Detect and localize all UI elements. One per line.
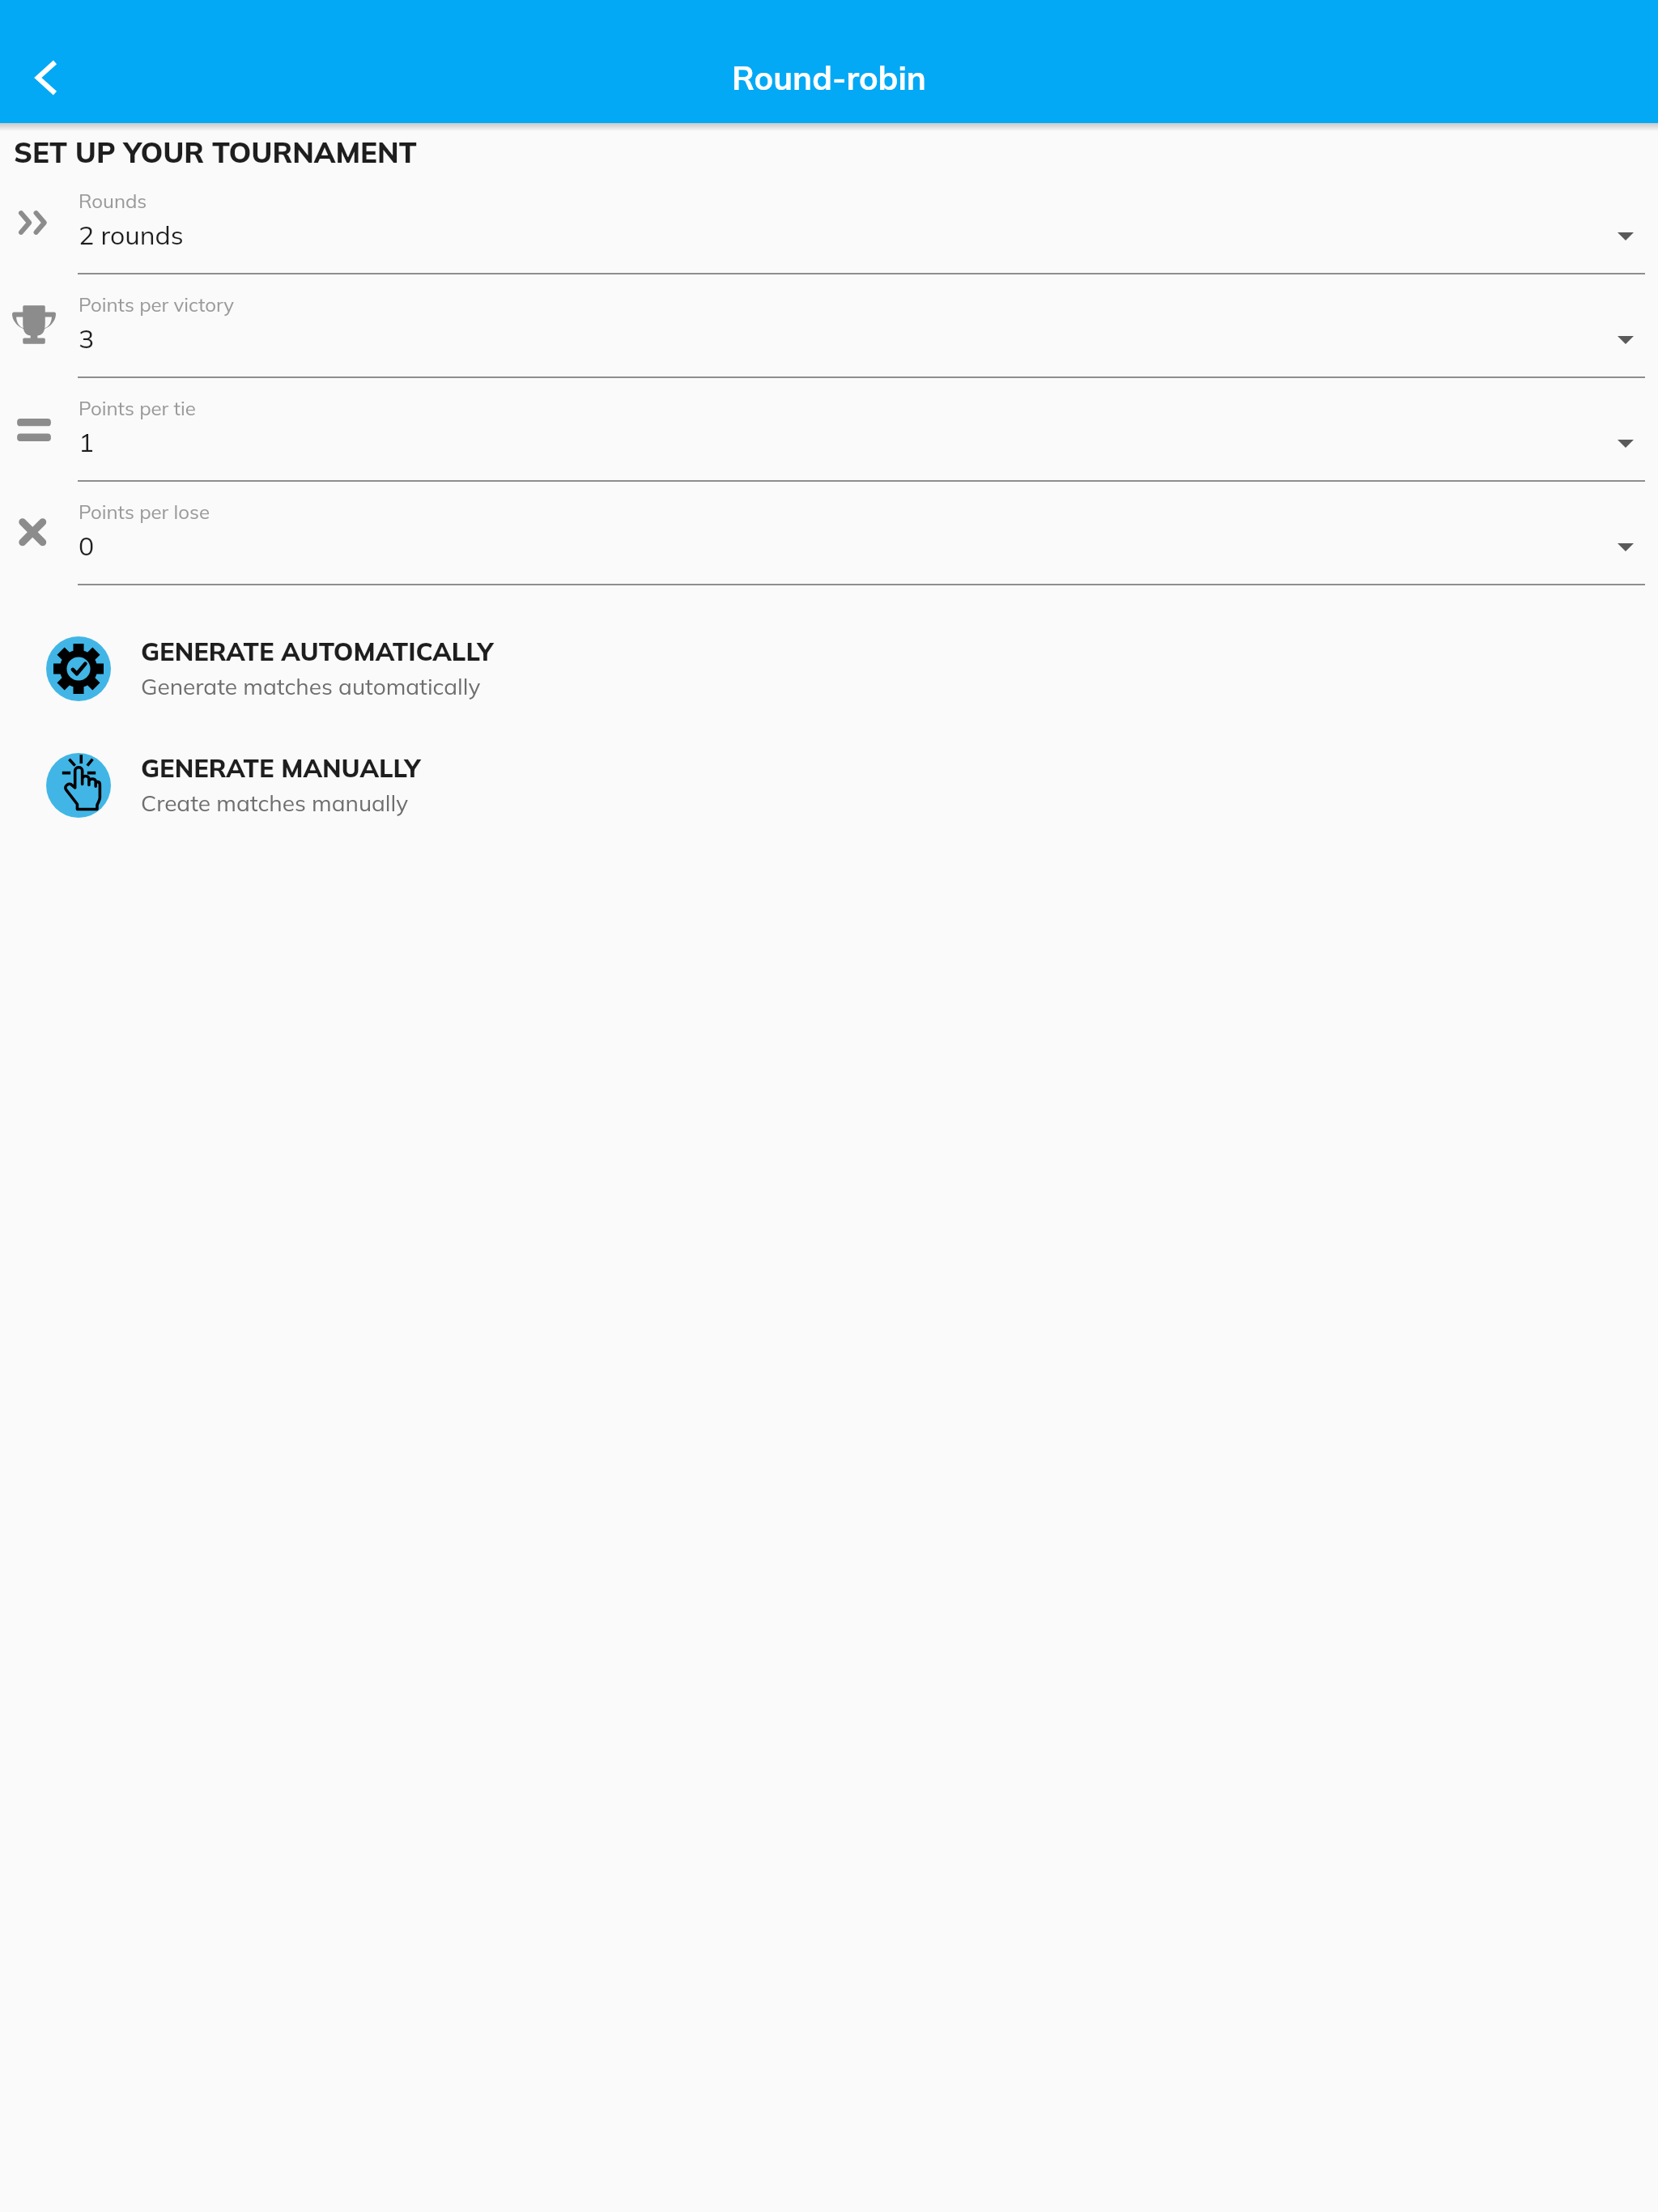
button[interactable]: Back [0,32,91,123]
staticText: Round-robin [586,57,1072,98]
staticText: 1 [79,426,95,458]
staticText: Points per victory [79,292,235,317]
staticText: Generate matches automatically [141,672,481,700]
staticText: 3 [79,322,95,355]
button[interactable]: Points per lose [0,482,1658,585]
button[interactable]: Points per victory [0,274,1658,378]
button[interactable]: GENERATE AUTOMATICALLY [0,610,1658,727]
button[interactable]: GENERATE MANUALLY [0,727,1658,844]
staticText: GENERATE MANUALLY [141,752,421,784]
staticText: 2 rounds [79,219,184,251]
staticText: GENERATE AUTOMATICALLY [141,636,494,667]
staticText: SET UP YOUR TOURNAMENT [14,134,417,170]
staticText: 0 [79,530,95,562]
staticText: Points per tie [79,396,196,420]
staticText: Create matches manually [141,789,409,817]
staticText: Points per lose [79,500,210,524]
button[interactable]: Points per tie [0,378,1658,482]
button[interactable]: Rounds [0,171,1658,274]
staticText: Rounds [79,189,147,213]
